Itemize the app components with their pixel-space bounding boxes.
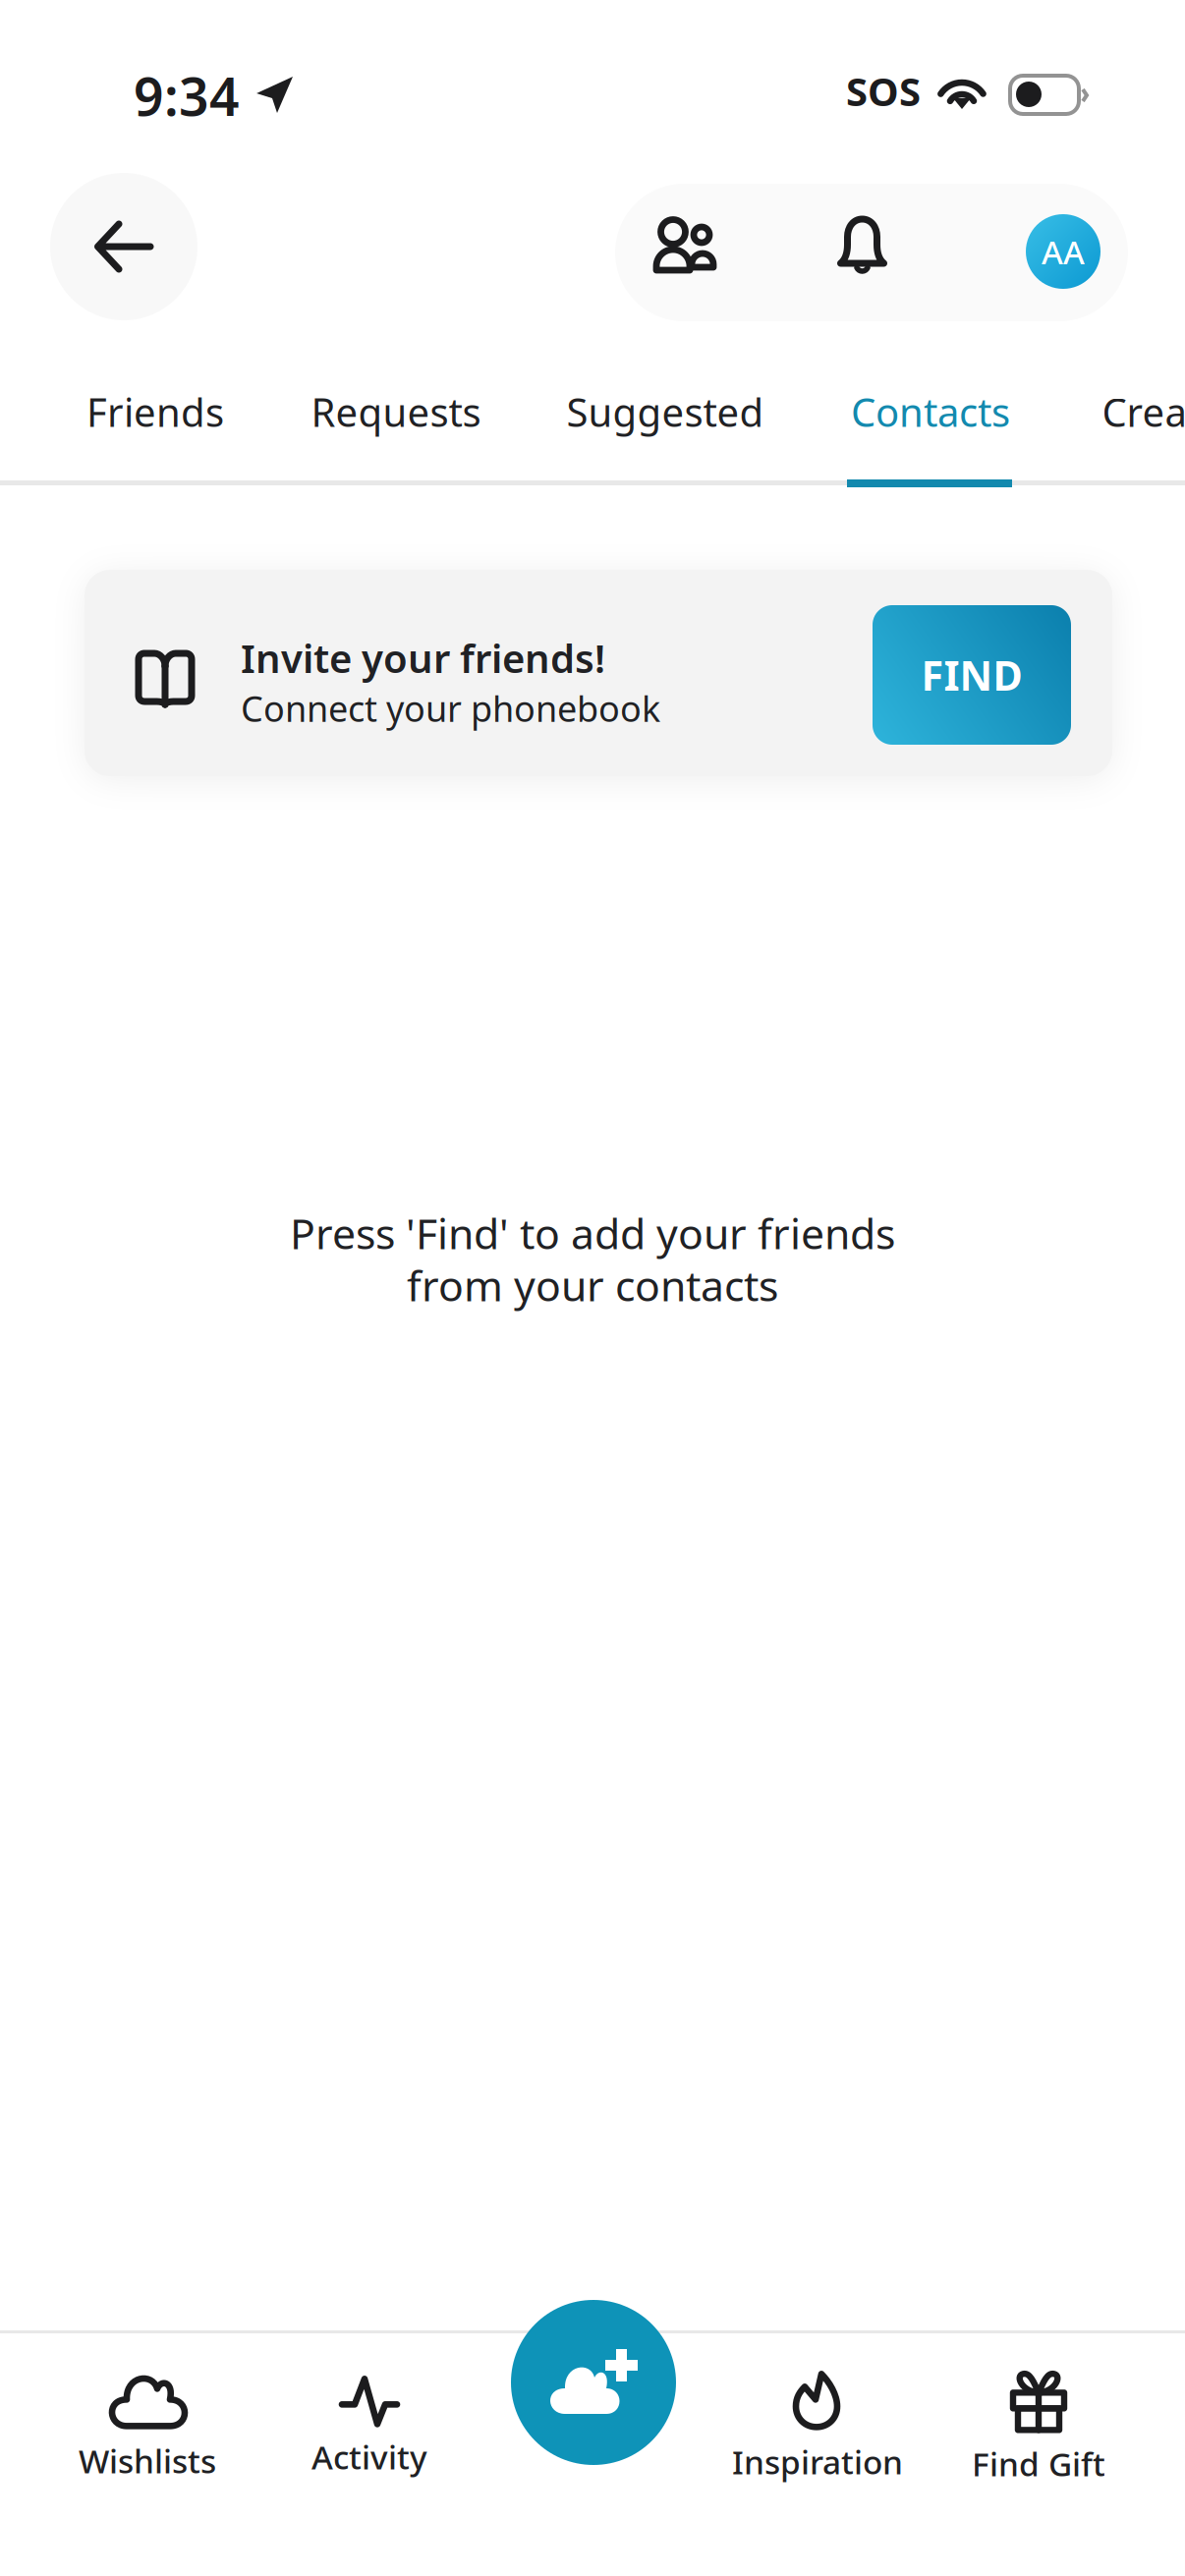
button[interactable]: Requests [280, 354, 512, 470]
staticText: SOS [846, 65, 921, 117]
staticText: Activity [311, 2435, 427, 2478]
staticText: Find Gift [972, 2442, 1105, 2485]
button[interactable]: Create wish [511, 2300, 676, 2465]
staticText: from your contacts [407, 1257, 778, 1313]
staticText: Wishlists [79, 2439, 216, 2482]
staticText: Press 'Find' to add your friends [290, 1205, 895, 1261]
button[interactable]: FIND [873, 605, 1071, 745]
staticText: Invite your friends! [241, 632, 605, 684]
staticText: 9:34 [134, 61, 240, 130]
button[interactable]: Back [50, 173, 197, 320]
staticText: AA [1042, 230, 1085, 273]
staticText: Requests [311, 386, 481, 438]
staticText: Inspiration [732, 2440, 903, 2483]
button[interactable]: Activity [252, 2348, 487, 2505]
button[interactable]: Friends [57, 354, 254, 470]
staticText: Connect your phonebook [241, 685, 660, 732]
button[interactable]: Notifications [789, 177, 936, 314]
button[interactable]: Friends [611, 176, 759, 313]
staticText: Contacts [851, 386, 1010, 438]
staticText: FIND [921, 648, 1022, 702]
button[interactable]: Find Gift [921, 2348, 1157, 2505]
button[interactable]: Create [1069, 354, 1185, 470]
button[interactable]: Inspiration [700, 2348, 935, 2505]
staticText: Create [1102, 386, 1185, 438]
button[interactable]: Contacts [821, 354, 1040, 470]
staticText: Friends [86, 386, 224, 438]
button[interactable]: Profile [994, 183, 1132, 320]
button[interactable]: Suggested [538, 354, 792, 470]
button[interactable]: Wishlists [29, 2348, 265, 2505]
staticText: Suggested [566, 386, 764, 438]
